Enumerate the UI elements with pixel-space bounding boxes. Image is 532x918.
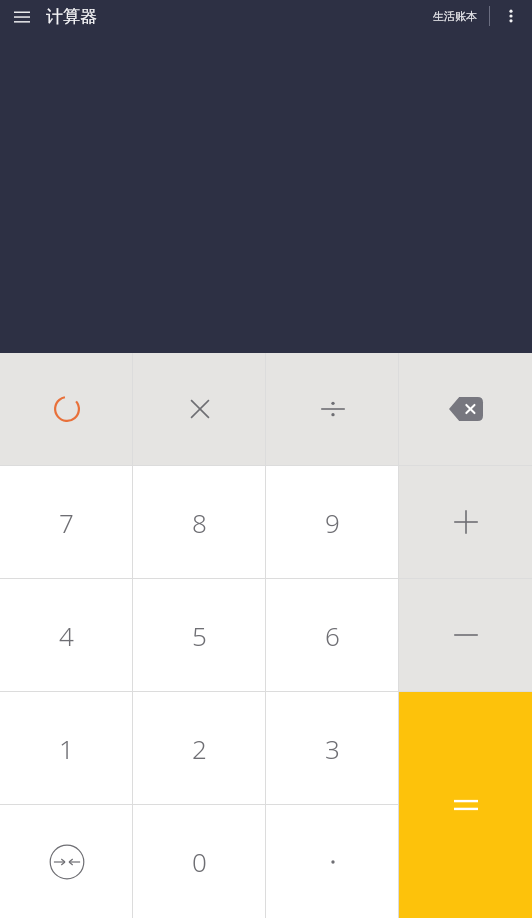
button[interactable]: Decimal point [266,805,399,918]
staticText: 8 [192,505,207,540]
button[interactable]: 2 [133,692,266,804]
button[interactable]: 8 [133,466,266,578]
button[interactable]: More options [494,0,528,32]
button[interactable]: 5 [133,579,266,691]
button[interactable]: 1 [0,692,133,804]
button[interactable]: 4 [0,579,133,691]
button[interactable]: Multiply [133,353,266,465]
staticText: 5 [192,618,207,653]
button[interactable]: Clear [0,353,133,465]
button[interactable]: 生活账本 [427,5,483,27]
button[interactable]: Equals [399,692,532,918]
button[interactable]: 0 [133,805,266,918]
button[interactable]: 9 [266,466,399,578]
button[interactable]: 6 [266,579,399,691]
button[interactable]: 7 [0,466,133,578]
staticText: 0 [192,844,207,879]
button[interactable]: Menu [4,0,40,32]
button[interactable]: Plus [399,466,532,578]
staticText: 计算器 [46,6,97,27]
button[interactable]: Collapse [0,805,133,918]
button[interactable]: Divide [266,353,399,465]
staticText: 生活账本 [433,9,477,23]
staticText: 9 [325,505,340,540]
button[interactable]: Backspace [399,353,532,465]
staticText: 1 [59,731,74,766]
staticText: 6 [325,618,340,653]
button[interactable]: 3 [266,692,399,804]
button[interactable]: Minus [399,579,532,691]
staticText: 2 [192,731,207,766]
staticText: 4 [59,618,74,653]
staticText: 3 [325,731,340,766]
staticText: 7 [59,505,74,540]
